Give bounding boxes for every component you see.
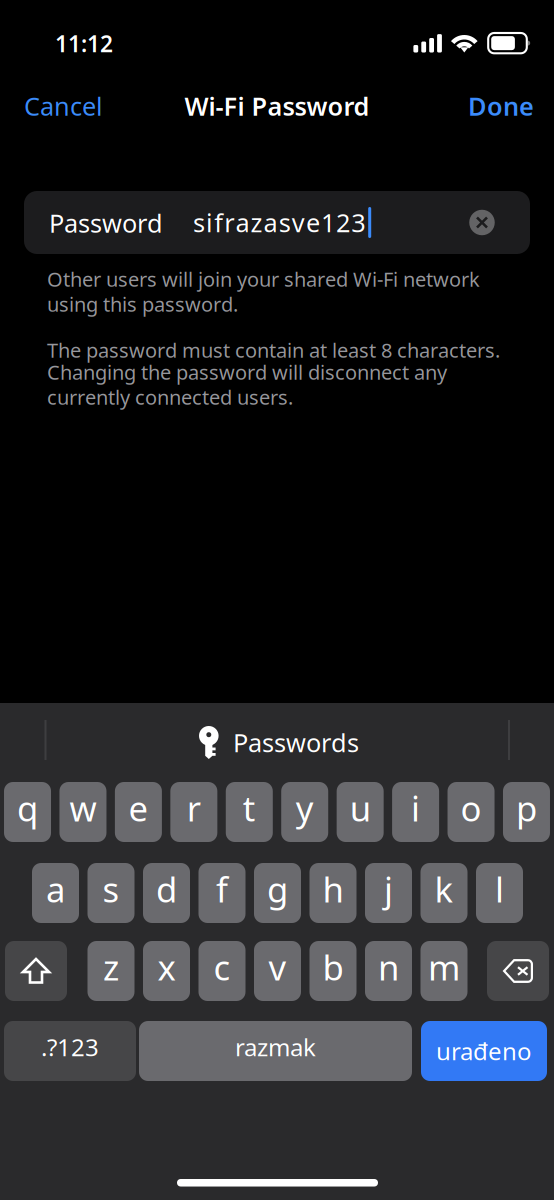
button[interactable]: Clear text <box>460 200 504 244</box>
button[interactable]: j <box>365 863 412 923</box>
staticText: 11:12 <box>55 28 113 58</box>
button[interactable]: y <box>281 782 328 842</box>
button[interactable]: u <box>337 782 384 842</box>
staticText: r <box>187 785 201 831</box>
staticText: u <box>350 785 371 831</box>
button[interactable]: s <box>87 863 134 923</box>
staticText: Done <box>468 89 534 123</box>
staticText: x <box>157 944 175 990</box>
button[interactable]: razmak <box>139 1021 412 1081</box>
staticText: Other users will join your shared Wi-Fi … <box>47 266 480 292</box>
staticText: v <box>268 944 286 990</box>
button[interactable]: c <box>198 941 245 1001</box>
staticText: i <box>411 785 420 831</box>
staticText: razmak <box>235 1031 316 1063</box>
button[interactable]: n <box>365 941 412 1001</box>
staticText: The password must contain at least 8 cha… <box>47 337 500 363</box>
staticText: currently connected users. <box>47 384 293 410</box>
button[interactable]: urađeno <box>421 1021 547 1081</box>
button[interactable]: Done <box>374 94 534 118</box>
button[interactable]: l <box>476 863 523 923</box>
staticText: n <box>378 944 399 990</box>
staticText: w <box>69 785 96 831</box>
button[interactable]: .?123 <box>4 1021 136 1081</box>
button[interactable]: b <box>309 941 356 1001</box>
button[interactable]: f <box>198 863 245 923</box>
button[interactable]: g <box>254 863 301 923</box>
staticText: c <box>213 944 230 990</box>
button[interactable]: o <box>447 782 494 842</box>
staticText: m <box>428 944 460 990</box>
button[interactable]: v <box>254 941 301 1001</box>
staticText: Wi-Fi Password <box>184 89 369 123</box>
button[interactable]: h <box>309 863 356 923</box>
button[interactable]: i <box>392 782 439 842</box>
staticText: d <box>156 866 177 912</box>
staticText: Passwords <box>233 726 359 759</box>
staticText: y <box>296 785 314 831</box>
button[interactable]: x <box>143 941 190 1001</box>
staticText: o <box>460 785 481 831</box>
staticText: q <box>17 785 38 831</box>
button[interactable]: Passwords <box>199 726 356 759</box>
staticText: k <box>434 866 453 912</box>
staticText: p <box>516 785 537 831</box>
button[interactable]: z <box>87 941 134 1001</box>
staticText: sifrazasve123 <box>193 206 365 239</box>
staticText: s <box>102 866 119 912</box>
button[interactable]: q <box>4 782 51 842</box>
staticText: g <box>267 866 288 912</box>
button[interactable]: d <box>143 863 190 923</box>
button[interactable]: m <box>420 941 467 1001</box>
staticText: h <box>322 866 343 912</box>
button[interactable]: t <box>226 782 273 842</box>
staticText: Changing the password will disconnect an… <box>47 359 447 385</box>
staticText: f <box>216 866 228 912</box>
staticText: a <box>46 866 65 912</box>
staticText: j <box>384 866 393 912</box>
staticText: Cancel <box>24 89 103 123</box>
staticText: Password <box>49 206 163 240</box>
button[interactable]: a <box>32 863 79 923</box>
button[interactable]: e <box>115 782 162 842</box>
button[interactable]: Cancel <box>24 94 184 118</box>
staticText: e <box>128 785 148 831</box>
staticText: z <box>103 944 119 990</box>
staticText: b <box>322 944 343 990</box>
button[interactable]: Delete <box>487 941 549 1001</box>
staticText: urađeno <box>436 1035 532 1067</box>
button[interactable]: Shift <box>5 941 67 1001</box>
button[interactable]: r <box>170 782 217 842</box>
staticText: using this password. <box>47 291 238 317</box>
staticText: l <box>495 866 504 912</box>
button[interactable]: p <box>503 782 550 842</box>
button[interactable]: k <box>420 863 467 923</box>
staticText: .?123 <box>41 1031 99 1063</box>
button[interactable]: w <box>59 782 106 842</box>
staticText: t <box>243 785 256 831</box>
